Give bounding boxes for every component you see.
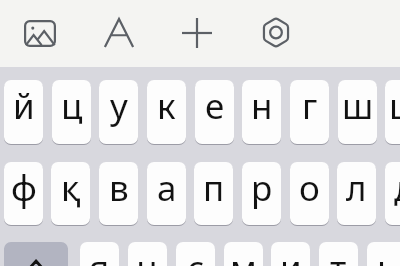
staticText: д — [394, 164, 400, 212]
button[interactable]: я — [80, 242, 119, 266]
button[interactable]: н — [242, 80, 281, 144]
button[interactable]: Insert image — [16, 9, 64, 57]
button[interactable]: т — [319, 242, 358, 266]
button[interactable]: м — [224, 242, 263, 266]
button[interactable]: щ — [385, 80, 400, 144]
staticText: м — [230, 244, 257, 266]
staticText: в — [109, 164, 129, 212]
staticText: ш — [342, 82, 374, 130]
button[interactable]: Shift — [4, 242, 68, 266]
button[interactable]: ф — [4, 162, 43, 225]
button[interactable]: ь — [367, 242, 400, 266]
button[interactable]: Text formatting — [95, 9, 143, 57]
button[interactable]: л — [337, 162, 376, 225]
staticText: я — [89, 244, 110, 266]
button[interactable]: қ — [51, 162, 90, 225]
staticText: ч — [137, 244, 158, 266]
button[interactable]: р — [242, 162, 281, 225]
button[interactable]: и — [271, 242, 310, 266]
staticText: щ — [389, 82, 400, 130]
button[interactable]: к — [147, 80, 186, 144]
staticText: ц — [61, 82, 83, 130]
button[interactable]: ч — [128, 242, 167, 266]
staticText: а — [157, 164, 177, 212]
staticText: п — [203, 164, 225, 212]
button[interactable]: с — [176, 242, 215, 266]
button[interactable]: у — [99, 80, 138, 144]
staticText: о — [299, 164, 320, 212]
staticText: у — [110, 82, 128, 130]
staticText: н — [251, 82, 273, 130]
button[interactable]: й — [4, 80, 43, 144]
staticText: и — [280, 244, 302, 266]
button[interactable]: Add — [173, 9, 221, 57]
button[interactable]: а — [147, 162, 186, 225]
button[interactable]: д — [385, 162, 400, 225]
staticText: с — [187, 244, 205, 266]
button[interactable]: в — [99, 162, 138, 225]
staticText: л — [346, 164, 367, 212]
staticText: ь — [377, 244, 397, 266]
button[interactable]: Settings — [252, 8, 300, 56]
staticText: ф — [11, 164, 37, 212]
button[interactable]: п — [194, 162, 233, 225]
staticText: г — [302, 82, 318, 130]
button[interactable]: г — [290, 80, 329, 144]
staticText: қ — [61, 164, 81, 212]
staticText: й — [13, 82, 35, 130]
button[interactable]: ш — [338, 80, 377, 144]
button[interactable]: е — [195, 80, 234, 144]
staticText: к — [157, 82, 176, 130]
staticText: т — [330, 244, 347, 266]
staticText: р — [251, 164, 273, 212]
staticText: е — [205, 82, 225, 130]
button[interactable]: ц — [52, 80, 91, 144]
button[interactable]: о — [290, 162, 329, 225]
